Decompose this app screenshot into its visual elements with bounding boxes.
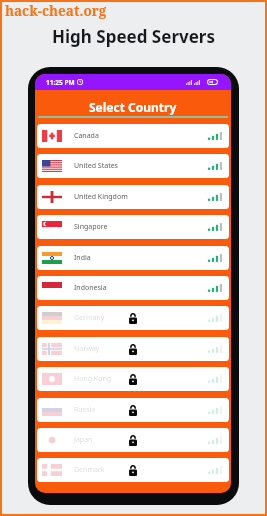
- staticText: hack-cheat.org: [5, 2, 107, 20]
- staticText: Indonesia: [74, 283, 107, 293]
- button[interactable]: Russia: [37, 398, 229, 422]
- staticText: Japan: [74, 435, 93, 445]
- staticText: United States: [74, 161, 118, 171]
- button[interactable]: Denmark: [37, 458, 229, 482]
- staticText: 11:25 PM: [46, 78, 75, 87]
- staticText: India: [74, 253, 91, 263]
- button[interactable]: Indonesia: [37, 276, 229, 300]
- button[interactable]: Norway: [37, 337, 229, 361]
- button[interactable]: Canada: [37, 124, 229, 148]
- staticText: Norway: [74, 344, 100, 354]
- button[interactable]: United Kingdom: [37, 185, 229, 209]
- staticText: United Kingdom: [74, 192, 128, 202]
- button[interactable]: Hong Kong: [37, 367, 229, 391]
- button[interactable]: Germany: [37, 306, 229, 330]
- button[interactable]: Japan: [37, 428, 229, 452]
- staticText: Denmark: [74, 465, 105, 475]
- staticText: High Speed Servers: [52, 25, 215, 48]
- button[interactable]: India: [37, 246, 229, 270]
- staticText: Select Country: [89, 99, 177, 115]
- staticText: Canada: [74, 131, 99, 141]
- staticText: Singapore: [74, 222, 108, 232]
- staticText: Germany: [74, 313, 105, 323]
- staticText: Hong Kong: [74, 374, 112, 384]
- staticText: Russia: [74, 405, 96, 415]
- button[interactable]: United States: [37, 154, 229, 178]
- button[interactable]: Singapore: [37, 215, 229, 239]
